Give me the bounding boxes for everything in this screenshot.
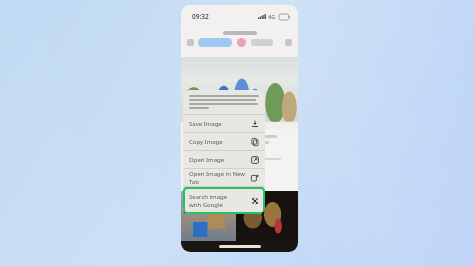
staticText: Open Image (189, 156, 251, 164)
button[interactable]: Open Image in New Tab (183, 169, 265, 186)
button[interactable]: Back (187, 39, 194, 46)
staticText: Open Image in New Tab (189, 170, 251, 186)
staticText: 09:32 (192, 12, 209, 21)
button[interactable]: Save Image (183, 115, 265, 132)
staticText: Save Image (189, 120, 251, 128)
button[interactable] (251, 39, 273, 46)
button[interactable]: Profile (237, 38, 246, 47)
button[interactable]: Copy Image (183, 133, 265, 150)
button[interactable] (198, 38, 232, 47)
button[interactable]: Search image with Google (183, 187, 265, 214)
button[interactable]: Menu (285, 39, 292, 46)
staticText: 4G (268, 13, 276, 20)
staticText: Search image with Google (189, 193, 251, 209)
staticText: Copy Image (189, 138, 251, 146)
button[interactable]: Open Image (183, 151, 265, 168)
